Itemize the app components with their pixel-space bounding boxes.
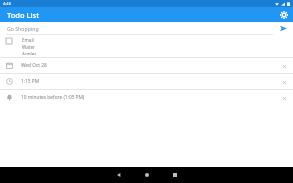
button[interactable]: Remove 1:15 PM <box>279 77 289 87</box>
button[interactable]: Settings <box>277 8 290 21</box>
staticText: Todo List <box>7 10 40 20</box>
button[interactable]: Back <box>110 167 128 183</box>
button[interactable]: Home <box>138 167 156 183</box>
staticText: Water <box>22 44 35 50</box>
staticText: Go Shopping <box>7 25 278 32</box>
staticText: 10 minutes before (1:05 PM) <box>21 94 279 101</box>
staticText: Email <box>22 37 34 43</box>
button[interactable]: 1:15 PM <box>0 74 293 89</box>
button[interactable]: Remove 10 minutes before (1:05 PM) <box>279 93 289 103</box>
staticText: 1:15 PM <box>21 78 279 85</box>
button[interactable]: Wed Oct 28 <box>0 58 293 73</box>
button[interactable]: Remove Wed Oct 28 <box>279 61 289 71</box>
button[interactable]: Send <box>278 23 289 34</box>
staticText: Wed Oct 28 <box>21 62 279 69</box>
staticText: Apples <box>22 51 37 55</box>
button[interactable]: Go Shopping <box>0 22 293 34</box>
button[interactable]: 10 minutes before (1:05 PM) <box>0 90 293 105</box>
button[interactable]: Email <box>0 35 293 55</box>
staticText: 4:46 <box>3 1 11 6</box>
button[interactable]: Recent apps <box>166 167 184 183</box>
